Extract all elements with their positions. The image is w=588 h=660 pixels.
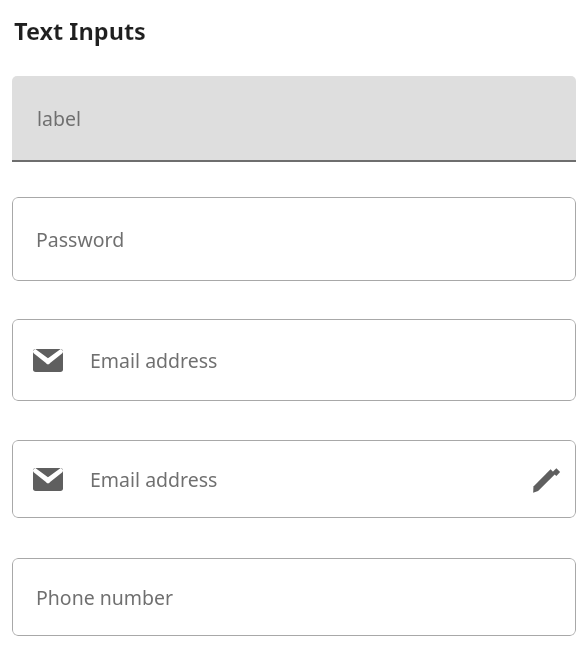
button[interactable]: Email address xyxy=(12,440,576,518)
button[interactable]: Edit xyxy=(524,457,568,501)
staticText: Password xyxy=(36,226,125,253)
staticText: Email address xyxy=(90,347,218,374)
button[interactable]: Password xyxy=(12,197,576,281)
button[interactable]: label xyxy=(12,76,576,162)
staticText: Text Inputs xyxy=(14,15,146,47)
staticText: label xyxy=(37,105,81,132)
staticText: Email address xyxy=(90,466,218,493)
staticText: Phone number xyxy=(36,584,174,611)
button[interactable]: Email address xyxy=(12,319,576,401)
button[interactable]: Phone number xyxy=(12,558,576,636)
